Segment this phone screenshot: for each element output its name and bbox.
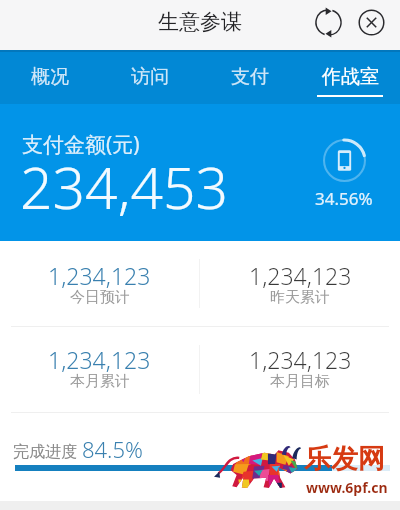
button[interactable]: Refresh (310, 4, 346, 40)
button[interactable]: 概况 (0, 50, 100, 104)
staticText: 本月累计 (70, 372, 130, 391)
button[interactable]: 支付 (200, 50, 300, 104)
staticText: 今日预计 (70, 288, 130, 307)
staticText: 1,234,123 (249, 260, 352, 291)
staticText: 完成进度 (13, 442, 77, 462)
staticText: 访问 (131, 65, 169, 89)
button[interactable]: 1,234,123 (0, 327, 199, 412)
staticText: 84.5% (82, 434, 143, 464)
staticText: 作战室 (322, 65, 379, 89)
button[interactable]: 访问 (100, 50, 200, 104)
staticText: 1,234,123 (249, 344, 352, 375)
staticText: 生意参谋 (158, 9, 242, 35)
staticText: 概况 (31, 65, 69, 89)
staticText: 乐发网 (304, 442, 385, 476)
button[interactable]: 1,234,123 (0, 241, 199, 326)
staticText: 34.56% (315, 187, 373, 210)
staticText: www.6pf.cn (306, 478, 388, 497)
staticText: 234,453 (20, 148, 229, 226)
button[interactable]: 1,234,123 (200, 327, 400, 412)
staticText: 支付 (231, 65, 269, 89)
staticText: 1,234,123 (48, 260, 151, 291)
button[interactable]: Close (353, 4, 389, 40)
staticText: 昨天累计 (270, 288, 330, 307)
staticText: 本月目标 (270, 372, 330, 391)
button[interactable]: 作战室 (300, 50, 400, 104)
staticText: 支付金额(元) (22, 130, 140, 159)
button[interactable]: 1,234,123 (200, 241, 400, 326)
staticText: 1,234,123 (48, 344, 151, 375)
